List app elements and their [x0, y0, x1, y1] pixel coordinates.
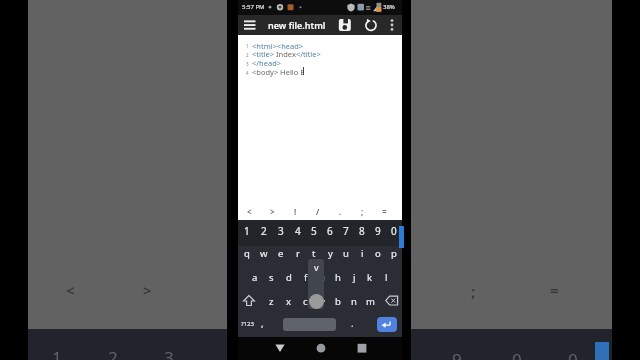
button[interactable]	[314, 341, 328, 355]
staticText: v	[320, 295, 325, 308]
button[interactable]: u	[338, 242, 354, 264]
staticText: 5:57 PM	[242, 3, 265, 11]
staticText: 7	[343, 224, 349, 238]
button[interactable]: 7	[338, 220, 354, 242]
button[interactable]	[377, 317, 397, 332]
staticText: r	[296, 247, 300, 260]
staticText: 1	[246, 43, 249, 49]
button[interactable]	[273, 341, 287, 355]
staticText: 3	[164, 346, 174, 360]
button[interactable]: 4	[289, 220, 306, 242]
staticText: 3	[246, 61, 249, 67]
staticText: >	[143, 280, 152, 300]
staticText: 0	[391, 224, 397, 238]
staticText: =	[382, 206, 387, 217]
button[interactable]	[338, 18, 352, 32]
staticText: 8	[359, 224, 365, 238]
button[interactable]	[384, 294, 401, 309]
button[interactable]: 3	[272, 220, 289, 242]
button[interactable]	[241, 294, 257, 310]
button[interactable]: o	[370, 242, 386, 264]
button[interactable]: w	[255, 242, 272, 264]
staticText: a	[252, 271, 258, 284]
button[interactable]: q	[238, 242, 255, 264]
button[interactable]: k	[362, 266, 378, 288]
button[interactable]: c	[297, 290, 314, 312]
button[interactable]: f	[297, 266, 314, 288]
staticText: e	[278, 247, 284, 260]
staticText: i	[361, 247, 364, 260]
button[interactable]: n	[346, 290, 362, 312]
button[interactable]: ,	[256, 315, 268, 331]
staticText: <	[247, 206, 252, 217]
staticText: d	[286, 271, 292, 284]
button[interactable]: y	[322, 242, 338, 264]
button[interactable]	[283, 318, 336, 331]
staticText: t	[312, 247, 316, 260]
button[interactable]: 1	[238, 220, 255, 242]
staticText: l	[385, 271, 388, 284]
button[interactable]: v	[314, 290, 330, 312]
button[interactable]: 2	[255, 220, 272, 242]
button[interactable]: a	[246, 266, 263, 288]
button[interactable]: e	[272, 242, 289, 264]
staticText: c	[303, 295, 308, 308]
button[interactable]: l	[378, 266, 394, 288]
button[interactable]: =	[373, 203, 395, 220]
button[interactable]: i	[354, 242, 370, 264]
button[interactable]: z	[263, 290, 280, 312]
staticText: >	[270, 206, 275, 217]
staticText: <	[66, 280, 75, 300]
button[interactable]	[386, 18, 398, 32]
button[interactable]: >	[261, 203, 284, 220]
staticText: s	[269, 271, 274, 284]
button[interactable]: 9	[370, 220, 386, 242]
button[interactable]: x	[280, 290, 297, 312]
staticText: n	[351, 295, 357, 308]
button[interactable]: s	[263, 266, 280, 288]
staticText: m	[366, 295, 375, 308]
staticText: .	[339, 206, 342, 217]
staticText: 2	[246, 52, 249, 58]
button[interactable]: <	[238, 203, 261, 220]
button[interactable]	[355, 341, 369, 355]
button[interactable]	[364, 18, 378, 32]
button[interactable]: j	[346, 266, 362, 288]
button[interactable]: 8	[354, 220, 370, 242]
button[interactable]: t	[306, 242, 322, 264]
button[interactable]: r	[289, 242, 306, 264]
staticText: =	[550, 280, 559, 300]
staticText: 3	[278, 224, 284, 238]
button[interactable]: .	[346, 315, 358, 331]
staticText: 0	[568, 348, 578, 360]
button[interactable]: ;	[351, 203, 373, 220]
staticText: 2	[108, 346, 118, 360]
button[interactable]: .	[329, 203, 351, 220]
staticText: v	[314, 261, 319, 273]
button[interactable]: /	[307, 203, 329, 220]
staticText: !	[294, 206, 297, 217]
button[interactable]: h	[330, 266, 346, 288]
button[interactable]: 5	[306, 220, 322, 242]
button[interactable]: d	[280, 266, 297, 288]
button[interactable]: b	[330, 290, 346, 312]
staticText: y	[328, 247, 333, 260]
staticText: w	[260, 247, 268, 260]
button[interactable]: m	[362, 290, 378, 312]
staticText: <title> Index</title>	[252, 49, 321, 59]
staticText: h	[335, 271, 341, 284]
button[interactable]: p	[386, 242, 402, 264]
staticText: 4	[295, 224, 301, 238]
button[interactable]: 6	[322, 220, 338, 242]
button[interactable]: !	[284, 203, 307, 220]
staticText: 9	[452, 348, 462, 360]
button[interactable]: 0	[386, 220, 402, 242]
button[interactable]: g	[314, 266, 330, 288]
staticText: o	[375, 247, 381, 260]
staticText: ;	[471, 281, 476, 301]
staticText: new file.html	[268, 19, 326, 31]
button[interactable]	[243, 18, 257, 32]
staticText: 5	[311, 224, 317, 238]
staticText: x	[286, 295, 292, 308]
staticText: g	[319, 271, 325, 284]
